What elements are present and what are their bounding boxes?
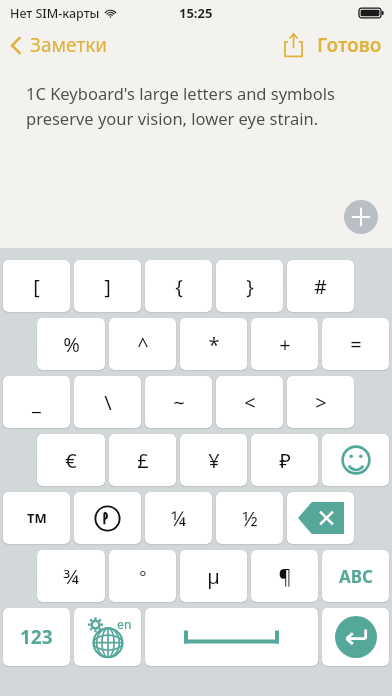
button[interactable]: \ xyxy=(74,376,141,428)
button[interactable]: # xyxy=(287,260,354,312)
staticText: ] xyxy=(104,273,111,300)
button[interactable]: £ xyxy=(109,434,176,486)
staticText: 123 xyxy=(20,624,53,650)
button[interactable]: Add xyxy=(344,200,378,234)
button[interactable]: < xyxy=(216,376,283,428)
button[interactable]: µ xyxy=(180,550,247,602)
button[interactable]: 123 xyxy=(3,608,70,666)
button[interactable]: ~ xyxy=(145,376,212,428)
button[interactable]: + xyxy=(251,318,318,370)
button[interactable]: ¾ xyxy=(37,550,105,602)
staticText: > xyxy=(315,389,327,416)
button[interactable]: € xyxy=(37,434,105,486)
button[interactable]: [ xyxy=(3,260,70,312)
staticText: } xyxy=(246,273,254,300)
staticText: < xyxy=(244,389,256,416)
button[interactable]: ½ xyxy=(216,492,283,544)
staticText: µ xyxy=(207,563,220,590)
button[interactable]: ABC xyxy=(322,550,389,602)
staticText: + xyxy=(279,331,291,358)
button[interactable]: ¥ xyxy=(180,434,247,486)
button[interactable]: ] xyxy=(74,260,141,312)
staticText: % xyxy=(63,331,80,358)
staticText: ~ xyxy=(173,389,185,416)
button[interactable]: Share xyxy=(278,30,309,60)
button[interactable]: ^ xyxy=(109,318,176,370)
button[interactable]: ₽ xyxy=(251,434,318,486)
staticText: ¥ xyxy=(208,447,220,474)
staticText: ¶ xyxy=(278,563,292,590)
staticText: ½ xyxy=(242,505,258,532)
staticText: en xyxy=(117,616,132,632)
staticText: 1C Keyboard's large letters and symbols … xyxy=(26,82,372,130)
button[interactable]: } xyxy=(216,260,283,312)
button[interactable]: ° xyxy=(109,550,176,602)
button[interactable]: % xyxy=(37,318,105,370)
button[interactable]: * xyxy=(180,318,247,370)
staticText: ^ xyxy=(137,331,149,358)
staticText: # xyxy=(314,273,327,300)
button[interactable]: Готово xyxy=(313,28,392,62)
button[interactable]: Delete xyxy=(287,492,354,544)
button[interactable]: Sound recording copyright xyxy=(74,492,141,544)
staticText: ¼ xyxy=(171,505,186,532)
button[interactable]: TM xyxy=(3,492,70,544)
staticText: Готово xyxy=(317,32,382,58)
staticText: ° xyxy=(139,565,147,588)
staticText: _ xyxy=(32,389,41,416)
staticText: TM xyxy=(27,509,47,527)
staticText: { xyxy=(175,273,183,300)
staticText: € xyxy=(65,447,77,474)
button[interactable]: _ xyxy=(3,376,70,428)
staticText: £ xyxy=(137,447,149,474)
staticText: 15:25 xyxy=(179,4,213,22)
button[interactable]: Change keyboard language xyxy=(74,608,141,666)
staticText: Заметки xyxy=(30,32,108,58)
staticText: ABC xyxy=(339,565,373,588)
button[interactable]: Return xyxy=(322,608,389,666)
staticText: \ xyxy=(104,389,112,416)
button[interactable]: Заметки xyxy=(0,28,118,62)
button[interactable]: > xyxy=(287,376,354,428)
staticText: [ xyxy=(33,273,40,300)
staticText: ₽ xyxy=(279,447,291,474)
staticText: * xyxy=(208,331,220,358)
button[interactable]: { xyxy=(145,260,212,312)
button[interactable]: ¼ xyxy=(145,492,212,544)
button[interactable]: ¶ xyxy=(251,550,318,602)
button[interactable]: Space xyxy=(145,608,318,666)
button[interactable]: Emoji xyxy=(322,434,389,486)
button[interactable]: = xyxy=(322,318,389,370)
staticText: ¾ xyxy=(63,563,79,590)
staticText: Нет SIM-карты xyxy=(10,5,100,22)
staticText: = xyxy=(350,331,362,358)
